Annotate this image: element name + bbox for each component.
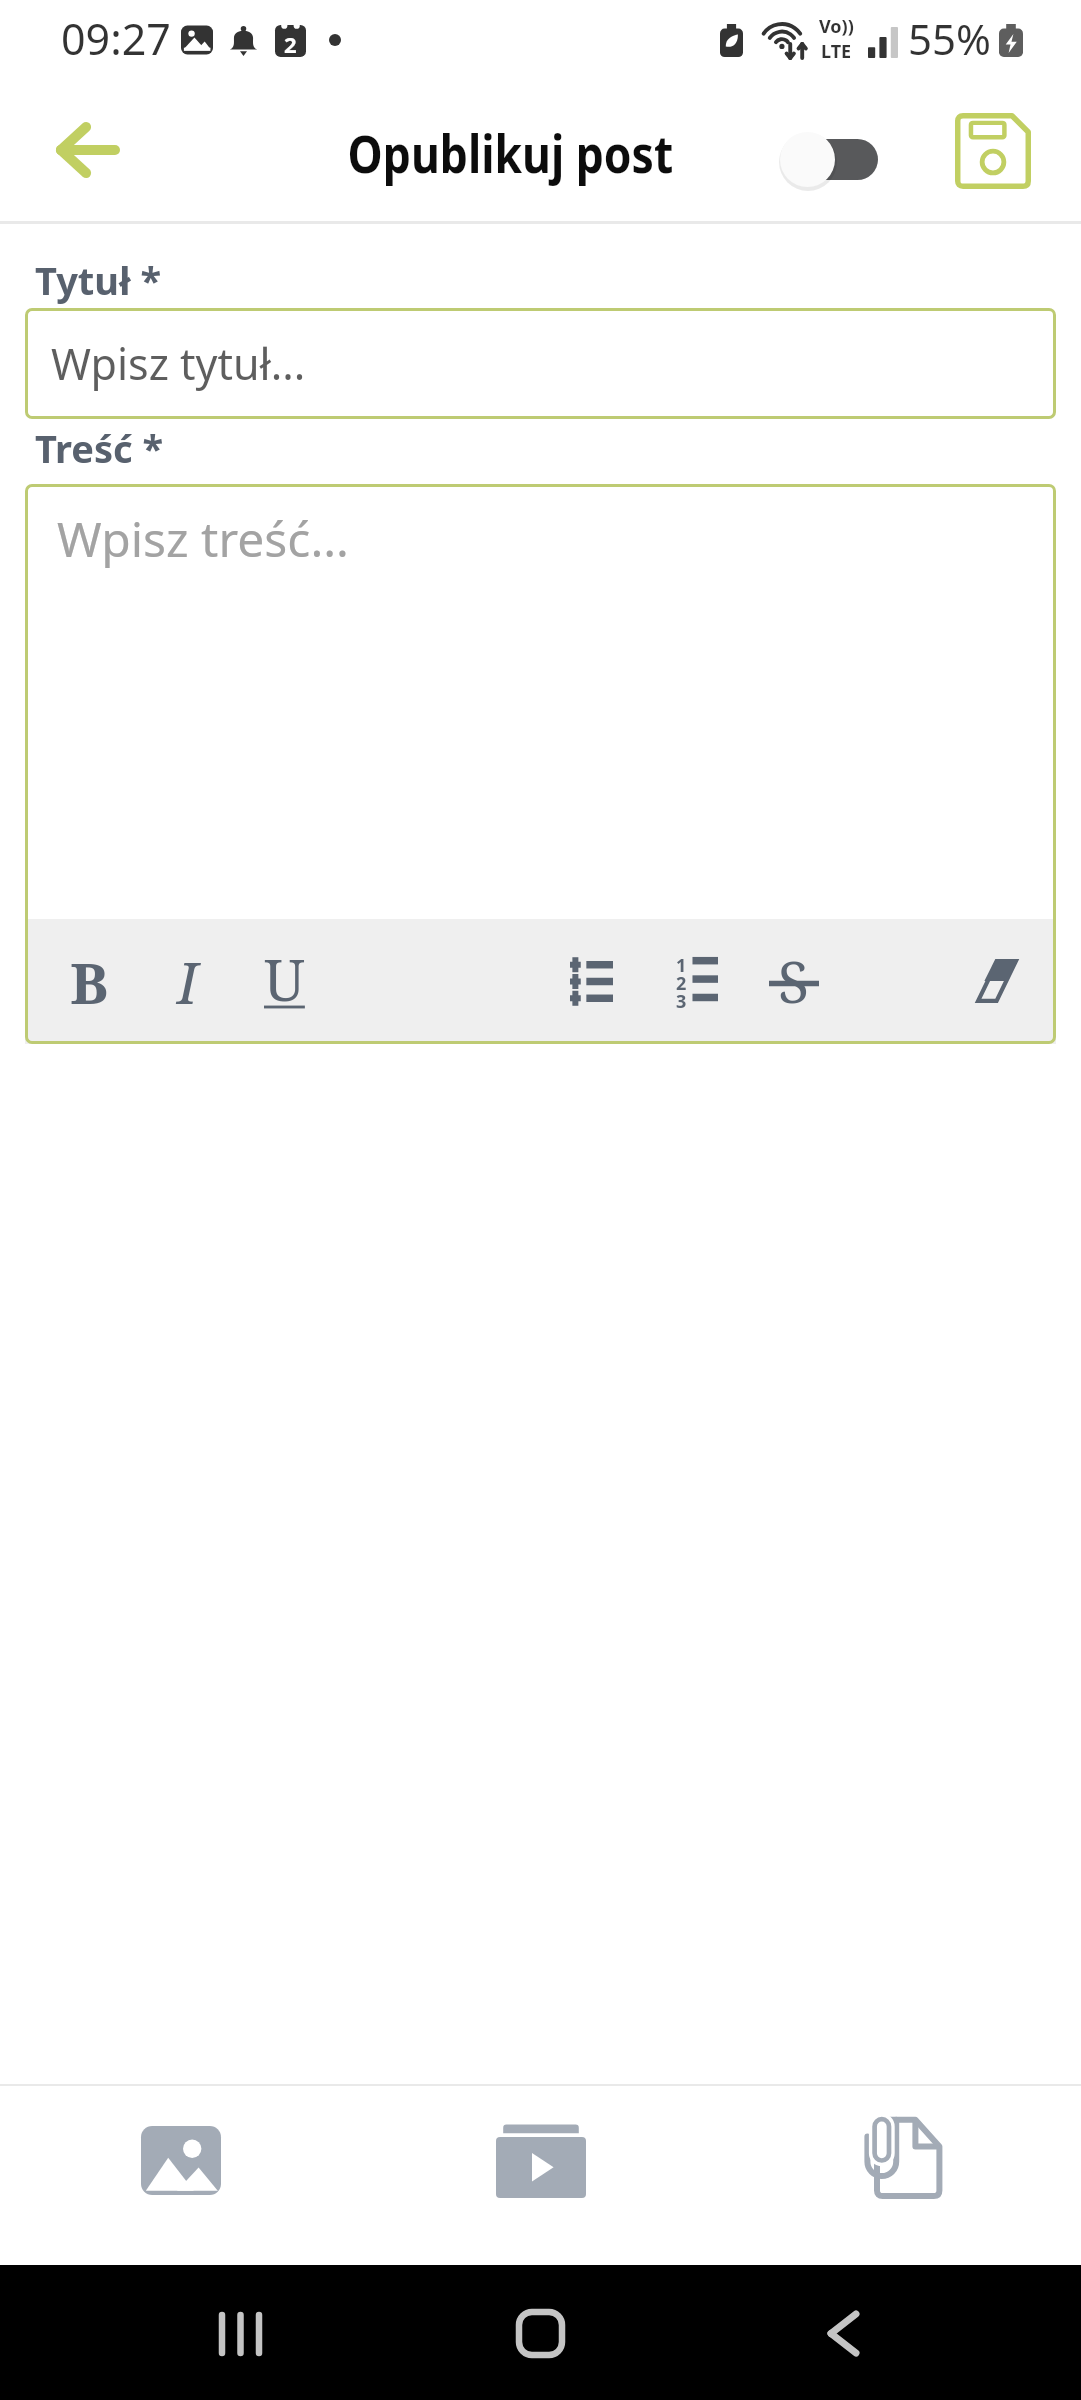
- button[interactable]: Add video: [361, 2086, 721, 2265]
- button[interactable]: Back: [763, 2266, 923, 2400]
- button[interactable]: Italic: [149, 919, 225, 1044]
- staticText: 3: [676, 989, 687, 1009]
- button[interactable]: Bold: [51, 919, 127, 1044]
- staticText: Tytuł *: [35, 254, 162, 306]
- button[interactable]: Clear formatting: [959, 918, 1035, 1043]
- button[interactable]: Attach file: [721, 2086, 1081, 2265]
- staticText: Opublikuj post: [348, 117, 673, 188]
- button[interactable]: Wpisz treść...: [25, 484, 1056, 919]
- staticText: Treść *: [35, 422, 164, 474]
- staticText: 2: [676, 971, 687, 991]
- button[interactable]: Add image: [0, 2086, 361, 2265]
- staticText: 1: [676, 953, 687, 973]
- button[interactable]: Wpisz tytuł...: [25, 308, 1056, 419]
- staticText: S: [778, 942, 810, 1020]
- staticText: 09:27: [61, 9, 171, 68]
- button[interactable]: Recent apps: [160, 2266, 320, 2400]
- staticText: Wpisz treść...: [57, 506, 349, 571]
- staticText: Wpisz tytuł...: [51, 334, 306, 393]
- staticText: B: [70, 943, 109, 1021]
- button[interactable]: Underline: [246, 916, 322, 1041]
- button[interactable]: Toggle publish: [755, 115, 886, 203]
- button[interactable]: Strikethrough: [756, 918, 832, 1043]
- button[interactable]: Home: [460, 2266, 620, 2400]
- button[interactable]: Save: [941, 96, 1045, 221]
- staticText: Vo)): [819, 14, 854, 39]
- staticText: LTE: [821, 39, 852, 64]
- staticText: I: [177, 943, 198, 1021]
- button[interactable]: Back: [28, 96, 144, 221]
- staticText: U: [264, 940, 305, 1018]
- button[interactable]: Bulleted list: [553, 919, 629, 1044]
- button[interactable]: Numbered list: [658, 917, 734, 1042]
- staticText: 55%: [908, 10, 991, 67]
- staticText: 2: [284, 29, 297, 59]
